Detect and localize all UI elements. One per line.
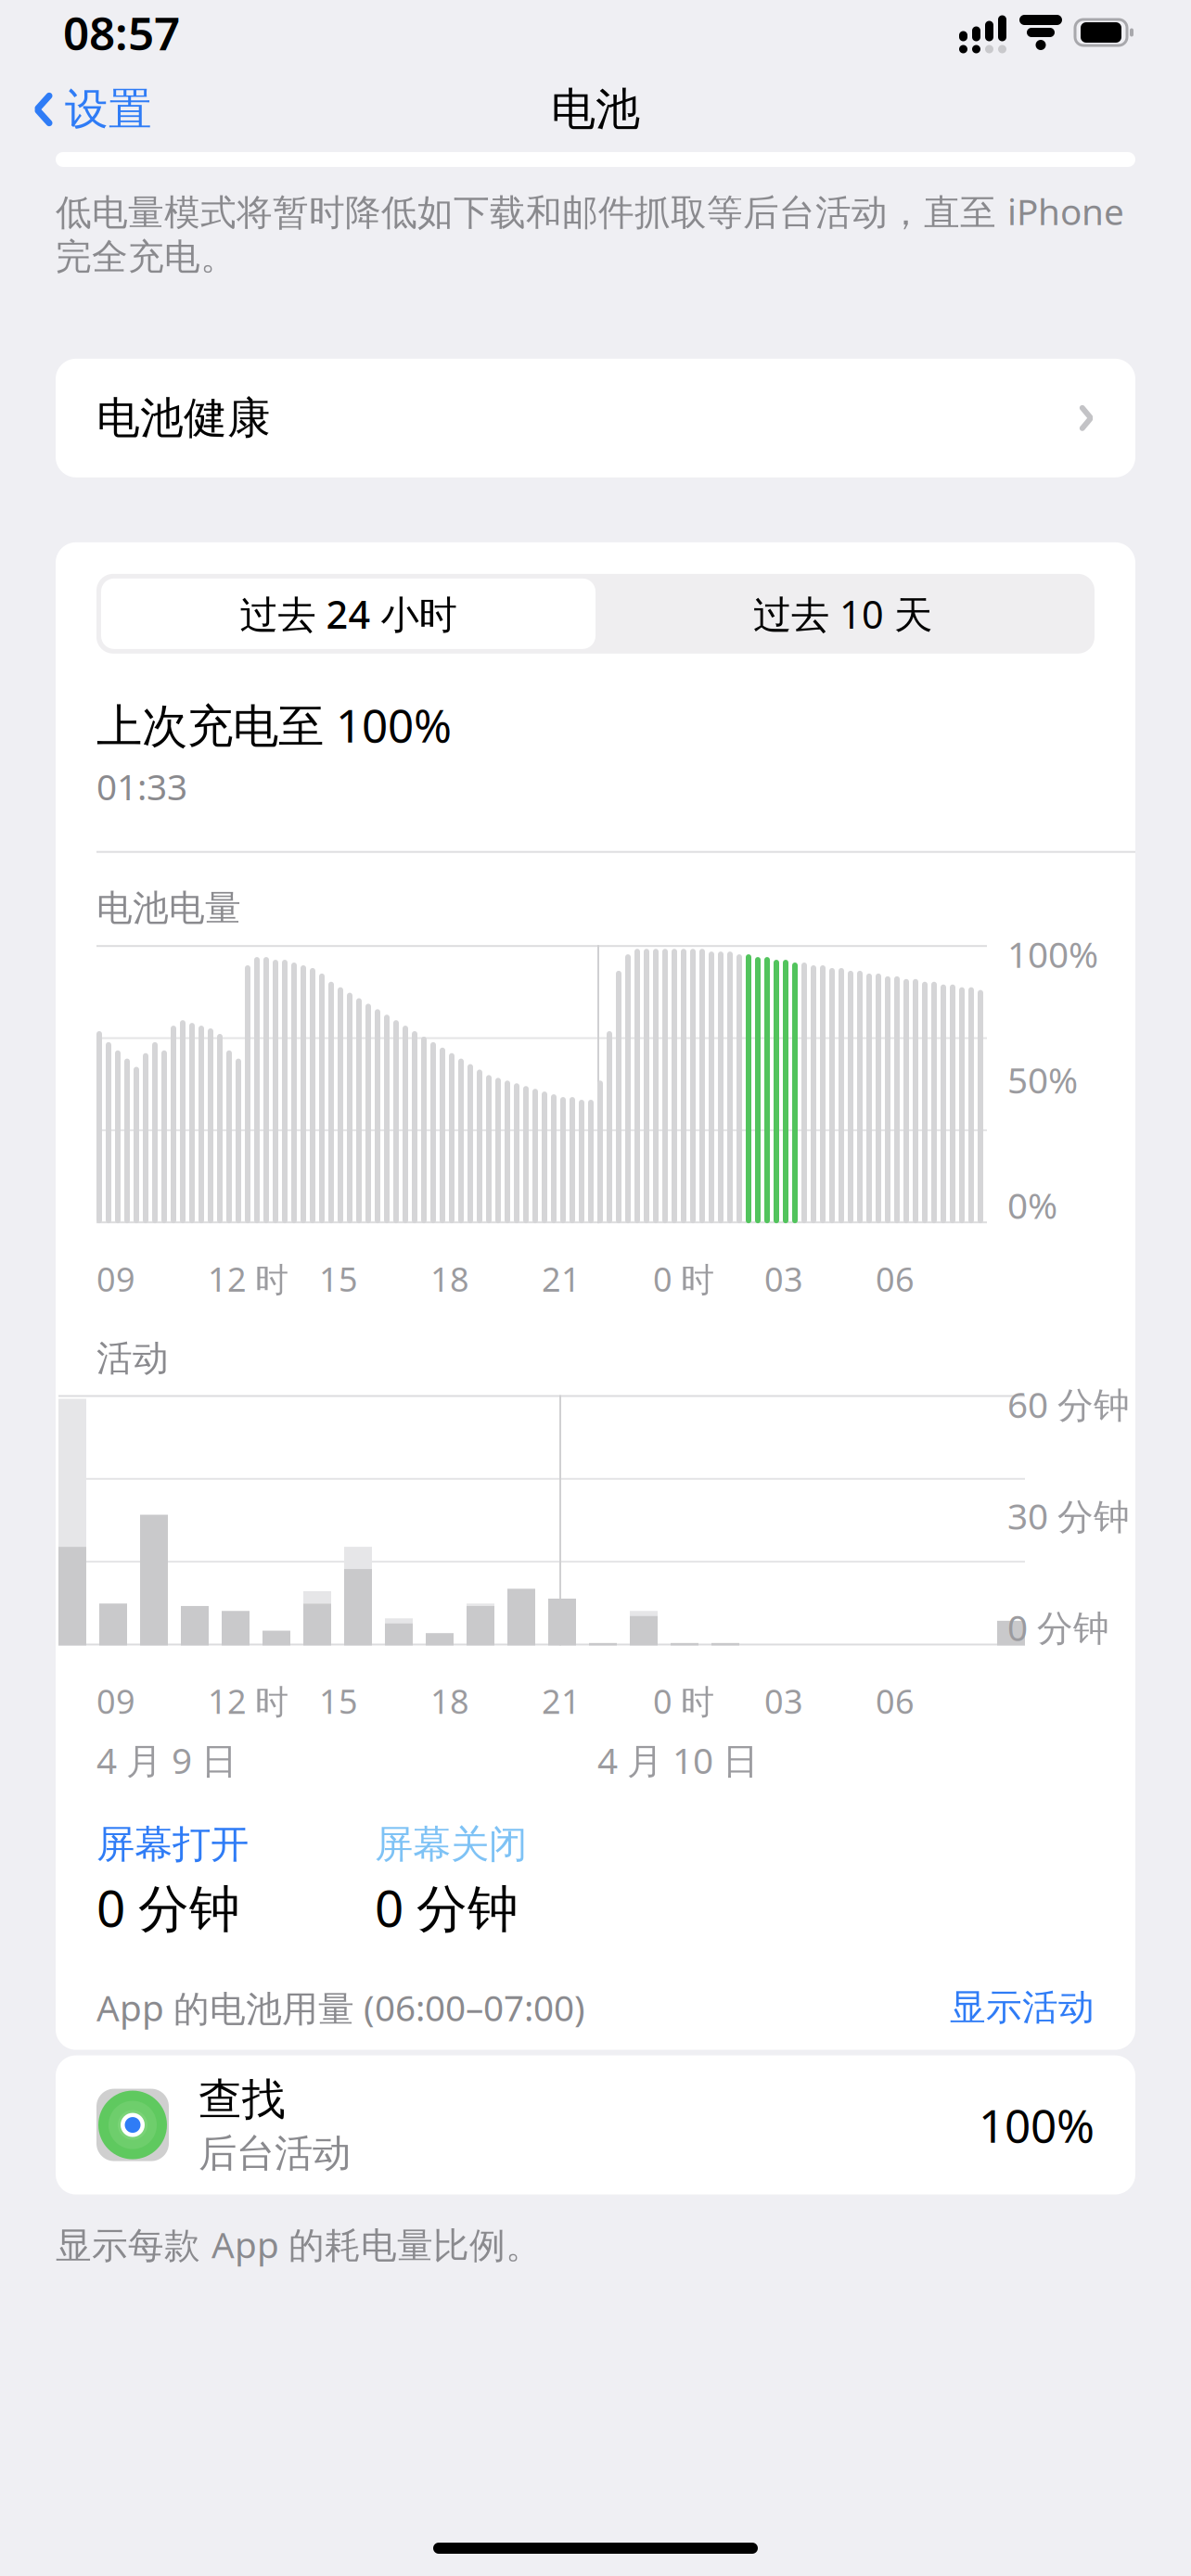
staticText: 03 xyxy=(764,1257,803,1301)
staticText: 21 xyxy=(542,1257,581,1301)
staticText: 30 分钟 xyxy=(1007,1492,1130,1539)
staticText: 09 xyxy=(96,1257,135,1301)
staticText: 4 月 10 日 xyxy=(597,1736,759,1784)
staticText: 0 分钟 xyxy=(96,1873,240,1941)
staticText: 12 时 xyxy=(208,1257,288,1301)
staticText: 15 xyxy=(319,1257,358,1301)
staticText: 0 时 xyxy=(653,1679,714,1723)
staticText: 08:57 xyxy=(63,2,180,63)
staticText: 21 xyxy=(542,1679,581,1723)
staticText: 0 分钟 xyxy=(1007,1603,1109,1651)
button[interactable]: 查找 xyxy=(56,2055,1135,2195)
staticText: 活动 xyxy=(96,1336,169,1380)
staticText: 60 分钟 xyxy=(1007,1380,1130,1428)
staticText: 06 xyxy=(876,1257,915,1301)
staticText: 设置 xyxy=(65,83,152,136)
staticText: 0 分钟 xyxy=(375,1873,519,1941)
staticText: 查找 xyxy=(198,2073,286,2126)
staticText: 100% xyxy=(1007,930,1098,978)
staticText: 低电量模式将暂时降低如下载和邮件抓取等后台活动，直至 iPhone 完全充电。 xyxy=(56,187,1124,279)
staticText: 18 xyxy=(430,1679,469,1723)
staticText: 电池电量 xyxy=(96,886,241,930)
staticText: 01:33 xyxy=(96,763,187,810)
staticText: 06 xyxy=(876,1679,915,1723)
staticText: 屏幕打开 xyxy=(96,1821,249,1868)
button[interactable]: 设置 xyxy=(0,72,152,147)
staticText: 过去 10 天 xyxy=(753,588,932,639)
button[interactable]: 过去 10 天 xyxy=(595,578,1090,649)
staticText: 0% xyxy=(1007,1181,1057,1229)
staticText: 12 时 xyxy=(208,1679,288,1723)
button[interactable]: 显示活动 xyxy=(950,1985,1095,2029)
staticText: 屏幕关闭 xyxy=(375,1821,527,1868)
staticText: 显示活动 xyxy=(950,1985,1095,2029)
staticText: 后台活动 xyxy=(198,2130,351,2177)
staticText: 电池健康 xyxy=(96,392,271,445)
staticText: 09 xyxy=(96,1679,135,1723)
staticText: 上次充电至 100% xyxy=(96,694,452,755)
button[interactable]: 过去 24 小时 xyxy=(101,578,595,649)
staticText: 18 xyxy=(430,1257,469,1301)
button[interactable]: 电池健康 xyxy=(56,359,1135,477)
staticText: 电池 xyxy=(551,82,640,137)
staticText: 50% xyxy=(1007,1056,1078,1103)
staticText: 15 xyxy=(319,1679,358,1723)
staticText: App 的电池用量 (06:00–07:00) xyxy=(96,1983,585,2031)
staticText: 0 时 xyxy=(653,1257,714,1301)
staticText: 100% xyxy=(979,2095,1095,2155)
staticText: 显示每款 App 的耗电量比例。 xyxy=(56,2220,542,2268)
staticText: 03 xyxy=(764,1679,803,1723)
staticText: 4 月 9 日 xyxy=(96,1736,237,1784)
staticText: 过去 24 小时 xyxy=(240,588,457,639)
